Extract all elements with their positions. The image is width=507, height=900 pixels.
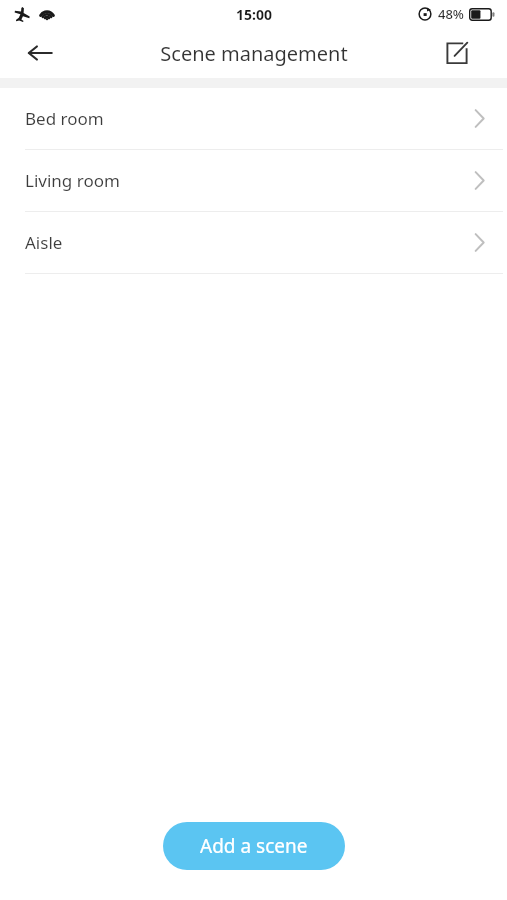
staticText: 48% [438,5,464,23]
button[interactable]: Edit [435,31,479,75]
staticText: Bed room [25,107,104,130]
staticText: 15:00 [236,5,272,24]
staticText: Living room [25,169,120,192]
staticText: Add a scene [200,833,308,859]
staticText: Scene management [160,40,348,67]
button[interactable]: Add a scene [163,822,345,870]
button[interactable]: Living room [0,150,507,211]
button[interactable]: Aisle [0,212,507,273]
button[interactable]: Bed room [0,88,507,149]
button[interactable]: Back [16,29,64,77]
staticText: Aisle [25,231,63,254]
